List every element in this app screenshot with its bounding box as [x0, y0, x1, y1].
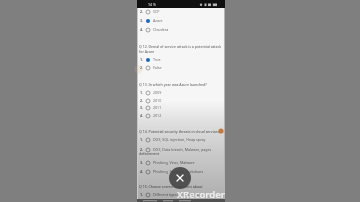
staticText: False [153, 65, 162, 70]
staticText: Q 12. Denial of service attack is a pote… [139, 44, 222, 49]
staticText: SCP [153, 9, 160, 14]
button[interactable]: 2. [140, 97, 162, 104]
button[interactable]: 2. [140, 146, 212, 153]
staticText: 1. [140, 57, 144, 62]
staticText: Different types of cloud are [153, 192, 199, 197]
staticText: Phishing, Virus, Malware [153, 160, 195, 165]
staticText: Phishing, Spyware, backdoors [153, 169, 204, 174]
button[interactable]: 4. [140, 168, 204, 175]
staticText: 2. [140, 65, 144, 70]
staticText: XRecorder [177, 188, 225, 201]
staticText: 1. [140, 90, 144, 95]
staticText: 2009 [153, 90, 162, 95]
button[interactable]: 1. [140, 56, 161, 63]
staticText: 4. [140, 113, 144, 118]
staticText: Q 14. Potential security threats in clou… [139, 129, 220, 134]
button[interactable]: 2. [140, 8, 160, 15]
button[interactable]: 4. [140, 112, 162, 119]
staticText: True [153, 57, 161, 62]
staticText: Q 13. In which year was Azure launched? [139, 82, 207, 87]
staticText: 4. [140, 169, 144, 174]
button[interactable]: 1. [140, 191, 199, 198]
button[interactable] [169, 167, 191, 189]
staticText: 4. [140, 27, 144, 32]
staticText: defacement [139, 151, 160, 156]
staticText: 1. [140, 137, 144, 142]
staticText: 1. [140, 192, 144, 197]
button[interactable]: 3. [140, 17, 163, 24]
button[interactable]: 1. [140, 89, 162, 96]
staticText: Q 15. Choose correct statement about [139, 184, 203, 189]
button[interactable]: 4. [140, 26, 169, 33]
staticText: for Azure [139, 49, 155, 54]
staticText: 14 % [148, 2, 156, 7]
button[interactable]: 3. [140, 104, 162, 111]
staticText: 3. [140, 105, 144, 110]
staticText: DOS, Data breach, Malware, pages [153, 147, 212, 152]
staticText: Cloudera [153, 27, 169, 32]
button[interactable]: 2. [140, 64, 162, 71]
staticText: 2010 [153, 98, 162, 103]
staticText: 2. [140, 147, 144, 152]
staticText: 2011 [153, 105, 162, 110]
button[interactable]: 1. [140, 136, 206, 143]
staticText: 3. [140, 18, 144, 23]
staticText: 2. [140, 9, 144, 14]
staticText: Azure [153, 18, 163, 23]
staticText: 2012 [153, 113, 162, 118]
staticText: 3. [140, 160, 144, 165]
staticText: DOS, SQL injection, Heap spray [153, 137, 206, 142]
button[interactable]: 3. [140, 159, 195, 166]
staticText: 2. [140, 98, 144, 103]
